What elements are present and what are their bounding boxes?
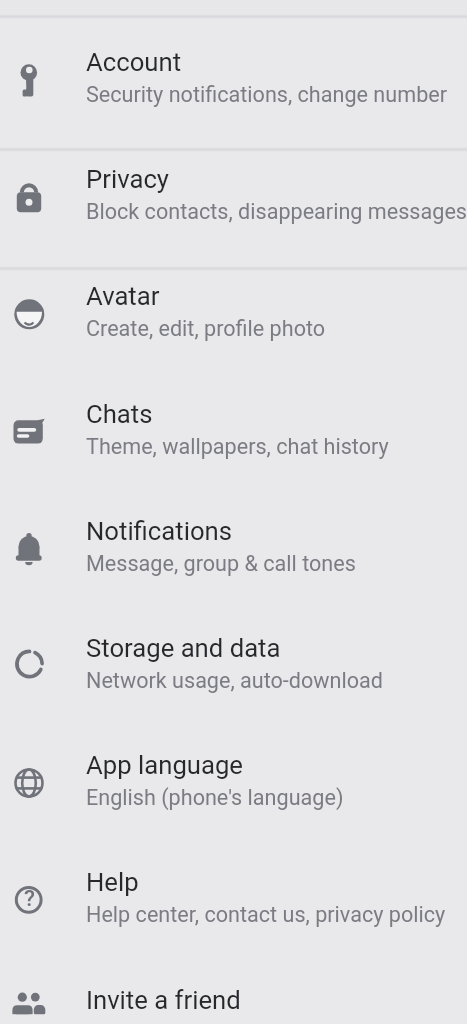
staticText: ? <box>24 885 35 911</box>
button[interactable]: App language <box>0 703 467 820</box>
staticText: Privacy <box>86 164 169 194</box>
staticText: Invite a friend <box>86 985 241 1015</box>
staticText: Network usage, auto-download <box>86 668 383 693</box>
button[interactable]: Chats <box>0 352 467 469</box>
button[interactable]: Storage and data <box>0 586 467 703</box>
staticText: Theme, wallpapers, chat history <box>86 434 389 459</box>
staticText: Help center, contact us, privacy policy <box>86 902 446 927</box>
button[interactable]: Privacy <box>0 117 467 234</box>
staticText: Create, edit, profile photo <box>86 316 326 341</box>
staticText: Security notifications, change number <box>86 82 448 107</box>
staticText: Notifications <box>86 516 233 546</box>
button[interactable]: Account <box>0 0 467 117</box>
button[interactable]: Help <box>0 820 467 937</box>
staticText: Account <box>86 47 182 77</box>
staticText: English (phone's language) <box>86 785 344 810</box>
staticText: Block contacts, disappearing messages <box>86 199 467 224</box>
staticText: Message, group & call tones <box>86 551 356 576</box>
staticText: Chats <box>86 399 153 429</box>
staticText: Storage and data <box>86 633 281 663</box>
button[interactable]: Invite a friend <box>0 938 467 1024</box>
button[interactable]: Avatar <box>0 234 467 351</box>
button[interactable]: Notifications <box>0 469 467 586</box>
staticText: App language <box>86 750 243 780</box>
staticText: Help <box>86 867 139 897</box>
staticText: Avatar <box>86 281 160 311</box>
